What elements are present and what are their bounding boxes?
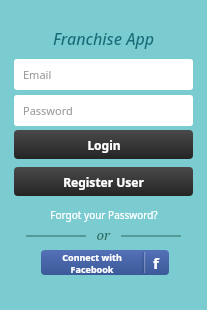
button[interactable]: Register User	[14, 167, 193, 196]
staticText: Email	[23, 67, 52, 82]
button[interactable]: Password	[14, 95, 193, 126]
staticText: Connect with Facebook	[41, 251, 143, 275]
button[interactable]: Login	[14, 130, 193, 159]
staticText: Login	[87, 137, 121, 153]
staticText: Franchise App	[0, 28, 207, 50]
staticText: Password	[23, 103, 73, 118]
button[interactable]: Forgot your Password?	[0, 206, 207, 223]
staticText: Register User	[63, 174, 144, 190]
staticText: or	[96, 226, 111, 244]
button[interactable]: Connect with Facebook	[41, 250, 169, 275]
staticText: f	[153, 253, 159, 273]
staticText: Forgot your Password?	[50, 208, 158, 222]
button[interactable]: Email	[14, 59, 193, 90]
